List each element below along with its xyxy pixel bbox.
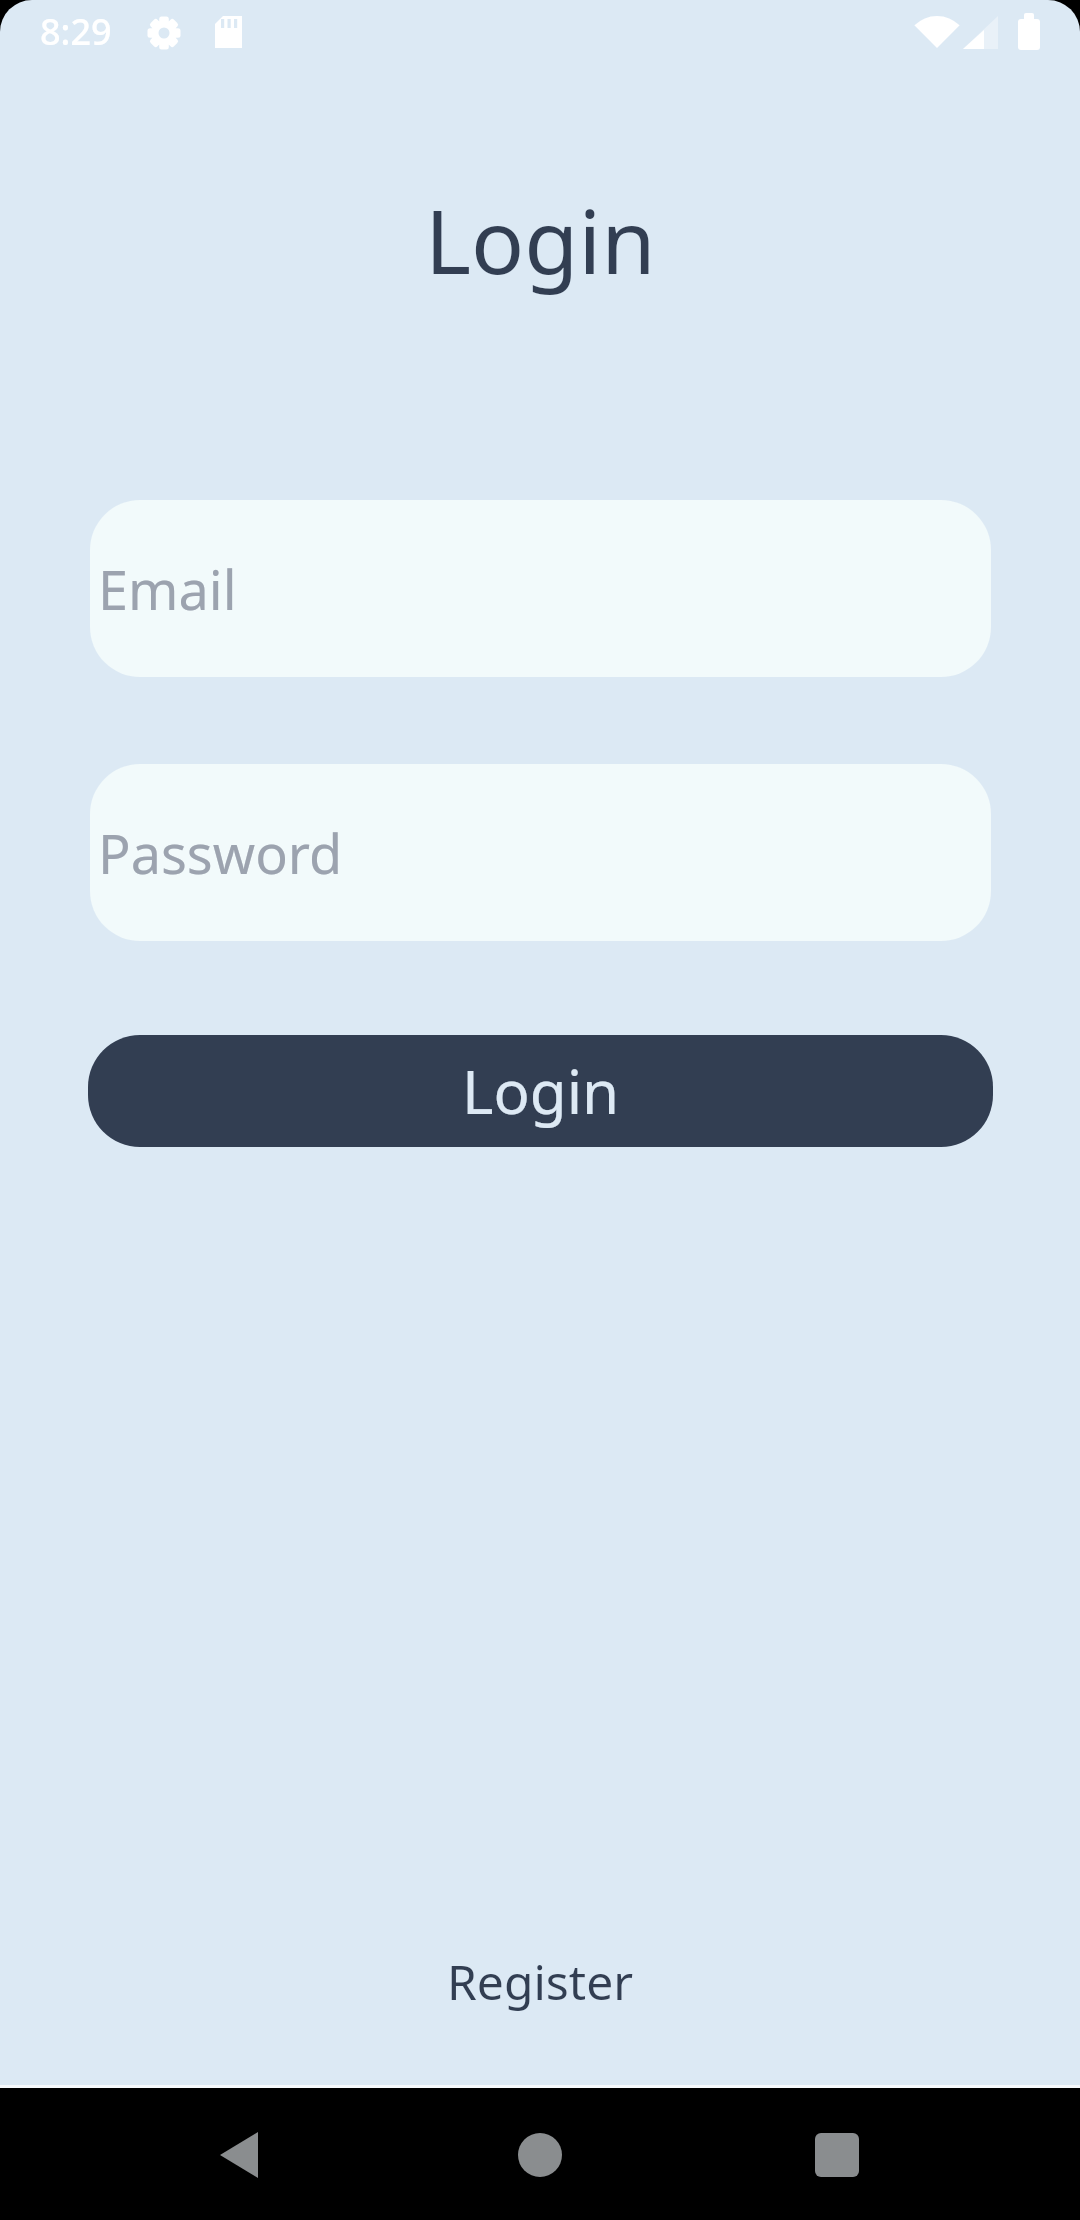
button[interactable]: Login bbox=[88, 1035, 993, 1147]
staticText: Email bbox=[98, 552, 237, 626]
button[interactable]: Email bbox=[90, 500, 991, 677]
staticText: Login bbox=[425, 180, 656, 300]
button[interactable]: Password bbox=[90, 764, 991, 941]
staticText: Password bbox=[98, 816, 343, 890]
staticText: 8:29 bbox=[40, 7, 112, 56]
staticText: Login bbox=[462, 1050, 620, 1132]
button[interactable]: Register bbox=[447, 1949, 634, 2014]
staticText: Register bbox=[447, 1949, 634, 2014]
